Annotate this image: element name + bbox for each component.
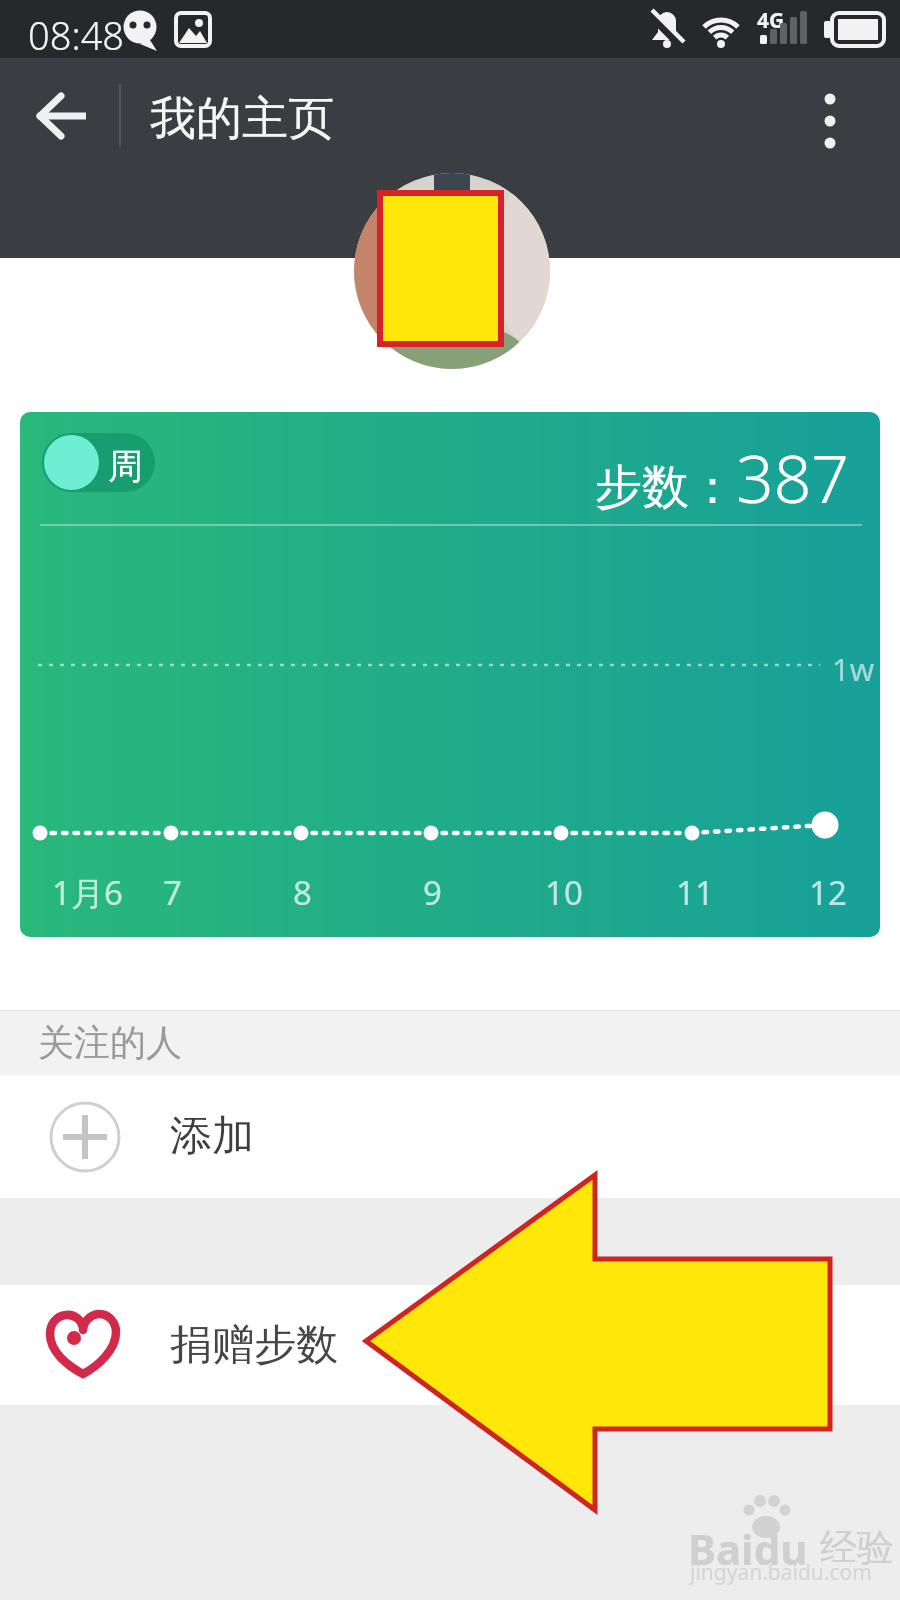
staticText: 周 xyxy=(108,444,143,488)
staticText: 8 xyxy=(293,870,312,915)
button[interactable]: 添加 xyxy=(0,1075,900,1198)
button[interactable]: 周 xyxy=(42,433,155,492)
button[interactable] xyxy=(790,76,870,156)
staticText: 11 xyxy=(676,870,714,915)
staticText: 08:48 xyxy=(28,9,125,61)
staticText: 4G xyxy=(757,6,785,35)
staticText: 12 xyxy=(809,870,847,915)
staticText: 1月6 xyxy=(52,870,123,915)
staticText: 9 xyxy=(423,870,442,915)
staticText: 关注的人 xyxy=(38,1020,182,1065)
staticText: 经验 xyxy=(820,1524,894,1571)
staticText: 添加 xyxy=(170,1110,254,1163)
staticText: 1w xyxy=(832,648,875,690)
staticText: 步数： xyxy=(595,458,736,517)
staticText: 我的主页 xyxy=(150,90,334,148)
staticText: Baidu xyxy=(688,1520,808,1577)
button[interactable]: 捐赠步数 xyxy=(0,1285,900,1405)
staticText: jingyan.baidu.com xyxy=(690,1558,872,1587)
staticText: 7 xyxy=(163,870,182,915)
button[interactable] xyxy=(20,76,105,156)
staticText: 387 xyxy=(736,432,850,522)
staticText: 捐赠步数 xyxy=(170,1319,338,1372)
button[interactable] xyxy=(354,173,550,369)
staticText: 10 xyxy=(545,870,583,915)
